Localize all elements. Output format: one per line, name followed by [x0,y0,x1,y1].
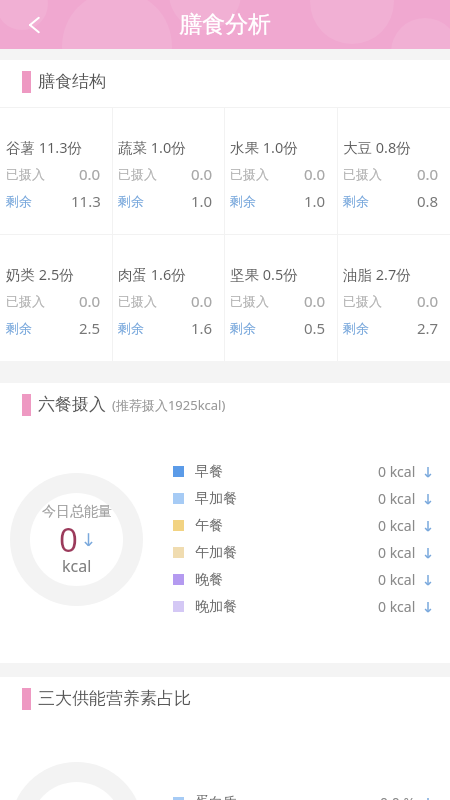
staticText: 剩余 [118,193,144,209]
staticText: 膳食分析 [179,10,271,39]
button[interactable]: 晚加餐 [173,593,450,620]
staticText: 0 kcal [378,516,416,535]
staticText: 11.3 [71,191,101,211]
staticText: 今日总能量 [42,503,112,521]
staticText: 蔬菜 1.0份 [118,137,186,157]
button[interactable]: 谷薯 11.3份 [0,108,112,234]
staticText: 0.0 [417,291,439,311]
staticText: 0 [59,517,78,562]
button[interactable]: 大豆 0.8份 [337,108,450,234]
staticText: 0.0 [79,164,101,184]
staticText: 剩余 [6,193,32,209]
staticText: 油脂 2.7份 [343,264,411,284]
staticText: 剩余 [343,320,369,336]
staticText: 膳食结构 [38,71,106,92]
staticText: 早加餐 [195,490,237,508]
staticText: 0 kcal [378,597,416,616]
button[interactable]: 奶类 2.5份 [0,235,112,361]
button[interactable]: 油脂 2.7份 [337,235,450,361]
staticText: 晚加餐 [195,598,237,616]
staticText: 2.5 [79,318,101,338]
button[interactable]: 肉蛋 1.6份 [112,235,224,361]
staticText: 剩余 [343,193,369,209]
staticText: 午加餐 [195,544,237,562]
staticText: 已摄入 [118,166,157,182]
staticText: 坚果 0.5份 [230,264,298,284]
staticText: 0.0 [304,291,326,311]
staticText: 1.6 [191,318,213,338]
staticText: 已摄入 [230,166,269,182]
staticText: 0.0 % [380,793,416,800]
staticText: 晚餐 [195,571,223,589]
staticText: 大豆 0.8份 [343,137,411,157]
button[interactable]: 早加餐 [173,485,450,512]
staticText: 已摄入 [230,293,269,309]
button[interactable]: 早餐 [173,458,450,485]
button[interactable]: 午加餐 [173,539,450,566]
button[interactable]: 蛋白质 [173,789,450,800]
staticText: 六餐摄入 [38,394,106,415]
staticText: 0.0 [191,291,213,311]
staticText: 0.0 [304,164,326,184]
staticText: 已摄入 [6,166,45,182]
staticText: 0.0 [417,164,439,184]
staticText: 0 kcal [378,489,416,508]
button[interactable]: 水果 1.0份 [224,108,337,234]
button[interactable]: 蔬菜 1.0份 [112,108,224,234]
staticText: 剩余 [6,320,32,336]
staticText: kcal [62,555,92,577]
staticText: 0.5 [304,318,326,338]
staticText: 蛋白质 [195,794,237,800]
button[interactable]: 午餐 [173,512,450,539]
staticText: 0 kcal [378,543,416,562]
staticText: 剩余 [118,320,144,336]
staticText: 已摄入 [118,293,157,309]
button[interactable]: Back [0,0,56,49]
staticText: 0.0 [191,164,213,184]
button[interactable]: 坚果 0.5份 [224,235,337,361]
staticText: 已摄入 [343,166,382,182]
staticText: 午餐 [195,517,223,535]
staticText: 0.8 [417,191,439,211]
staticText: 2.7 [417,318,439,338]
staticText: 谷薯 11.3份 [6,137,83,157]
staticText: 已摄入 [6,293,45,309]
staticText: 0.0 [79,291,101,311]
staticText: 0 kcal [378,462,416,481]
staticText: 已摄入 [343,293,382,309]
staticText: 奶类 2.5份 [6,264,74,284]
staticText: 剩余 [230,193,256,209]
staticText: 早餐 [195,463,223,481]
staticText: 剩余 [230,320,256,336]
button[interactable]: 晚餐 [173,566,450,593]
staticText: 肉蛋 1.6份 [118,264,186,284]
staticText: 1.0 [304,191,326,211]
staticText: (推荐摄入1925kcal) [112,396,226,414]
staticText: 1.0 [191,191,213,211]
staticText: 水果 1.0份 [230,137,298,157]
staticText: 三大供能营养素占比 [38,688,191,709]
staticText: 0 kcal [378,570,416,589]
